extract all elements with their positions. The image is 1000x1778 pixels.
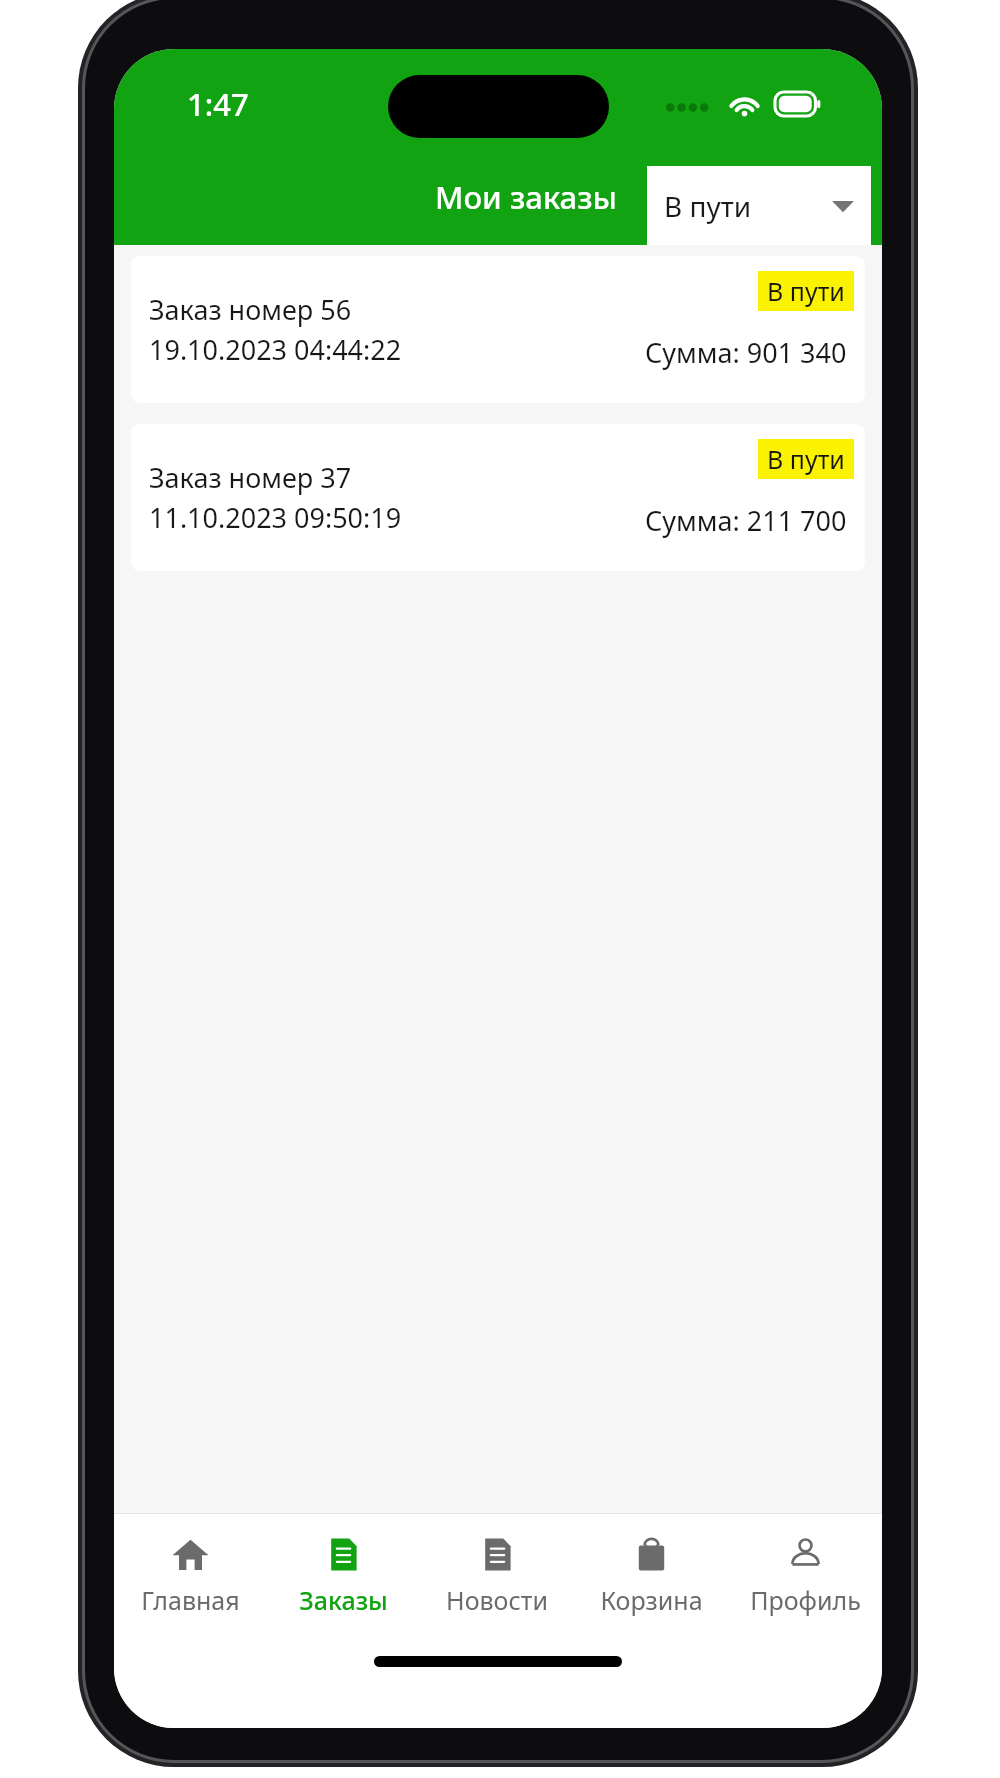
staticText: Сумма: 211 700: [645, 502, 847, 539]
button[interactable]: Корзина: [574, 1514, 728, 1638]
staticText: Профиль: [750, 1583, 861, 1617]
button[interactable]: Главная: [114, 1514, 267, 1638]
staticText: Заказ номер 37: [149, 459, 352, 496]
staticText: Корзина: [600, 1583, 703, 1617]
button[interactable]: Профиль: [728, 1514, 882, 1638]
staticText: 1:47: [187, 83, 249, 125]
staticText: В пути: [664, 187, 752, 225]
staticText: Новости: [446, 1583, 548, 1617]
staticText: 11.10.2023 09:50:19: [149, 499, 402, 536]
staticText: Мои заказы: [435, 176, 617, 218]
staticText: В пути: [767, 274, 845, 308]
staticText: 19.10.2023 04:44:22: [149, 331, 402, 368]
button[interactable]: Новости: [420, 1514, 574, 1638]
button[interactable]: В пути: [131, 424, 865, 571]
staticText: В пути: [767, 442, 845, 476]
staticText: Заказы: [299, 1583, 388, 1617]
staticText: Сумма: 901 340: [645, 334, 847, 371]
button[interactable]: Заказы: [267, 1514, 420, 1638]
staticText: Заказ номер 56: [149, 291, 352, 328]
button[interactable]: В пути: [647, 166, 871, 245]
button[interactable]: В пути: [131, 256, 865, 403]
staticText: Главная: [141, 1583, 240, 1617]
